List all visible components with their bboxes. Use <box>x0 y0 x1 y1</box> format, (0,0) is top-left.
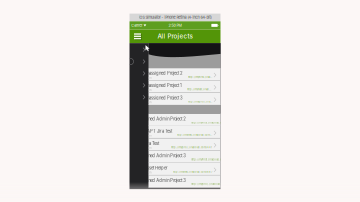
button[interactable]: Unassigned Project 3 <box>148 93 220 105</box>
button[interactable]: Unassigned Project 1 <box>148 80 220 93</box>
staticText: admin <box>144 76 151 79</box>
staticText: http://mytest.jiracloud.com/887 <box>187 88 212 91</box>
staticText: iOS Simulator - iPhone Retina (4-inch 64… <box>138 15 211 20</box>
staticText: Unassigned Project 3 <box>144 95 183 100</box>
staticText: Jira Test <box>144 141 159 146</box>
staticText: http://myfirst.jiracloud.com/231 <box>191 121 223 124</box>
button[interactable]: Unassigned Admin Project 3 <box>148 151 220 163</box>
button[interactable]: Jira Test <box>148 138 220 151</box>
staticText: Unassigned Project 1 <box>144 83 182 88</box>
button[interactable]: Asset Helper <box>148 163 220 175</box>
staticText: admin <box>144 88 151 92</box>
staticText: All Projects <box>157 32 192 40</box>
staticText: http://myfirst.jiracloud.com/231 <box>188 75 212 79</box>
staticText: admin <box>133 183 140 186</box>
button[interactable]: Unassigned Project 2 <box>148 68 220 80</box>
staticText: GAPT Jira Test <box>144 129 172 134</box>
staticText: http://mytest.jiracloud.com/887 <box>173 170 212 173</box>
staticText: Carrier <box>131 23 142 28</box>
staticText: admin <box>144 134 151 137</box>
staticText: Unassigned Admin Project 2 <box>133 116 186 121</box>
staticText: admin <box>144 101 151 104</box>
button[interactable]: Menu <box>130 29 144 43</box>
staticText: http://myproj.jiracloud.com/441 <box>191 183 223 186</box>
button[interactable]: GAPT Jira Test <box>148 126 220 138</box>
staticText: http://myproj.jiracloud.com/441 <box>188 100 212 103</box>
staticText: http://myproj.jiracloud.com/441 <box>171 146 212 149</box>
button[interactable]: Unassigned Admin Project 2 <box>148 114 220 126</box>
staticText: 2:50 PM <box>168 23 181 28</box>
staticText: Unassigned Admin Project 3 <box>133 153 186 158</box>
staticText: admin <box>144 171 151 174</box>
staticText: admin <box>144 146 151 149</box>
staticText: http://mytest.jiracloud.com/887 <box>177 133 212 136</box>
button[interactable]: Unassigned Admin Project 3 <box>148 175 220 187</box>
staticText: Unassigned Project 2 <box>144 71 183 76</box>
staticText: Unassigned Admin Project 3 <box>133 178 186 183</box>
staticText: http://myfirst.jiracloud.com/231 <box>191 158 223 161</box>
staticText: Asset Helper <box>144 166 168 171</box>
